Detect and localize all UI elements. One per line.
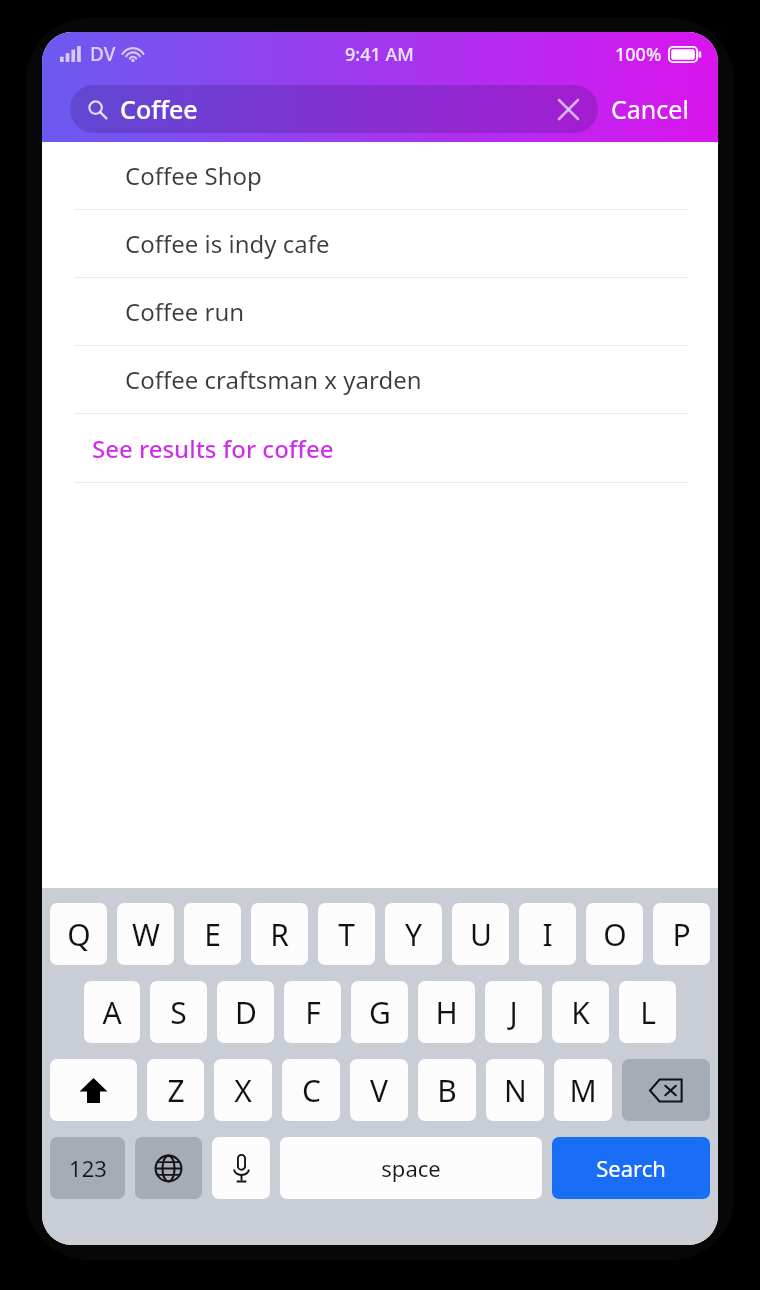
button[interactable]: A <box>84 981 140 1043</box>
staticText: G <box>369 992 391 1033</box>
button[interactable]: P <box>653 903 710 965</box>
staticText: V <box>370 1070 388 1111</box>
staticText: Search <box>596 1153 666 1183</box>
staticText: H <box>435 992 458 1033</box>
button[interactable]: D <box>217 981 274 1043</box>
button[interactable]: B <box>418 1059 476 1121</box>
button[interactable]: Shift <box>50 1059 137 1121</box>
button[interactable]: Clear search <box>550 91 586 127</box>
staticText: C <box>302 1070 321 1111</box>
button[interactable]: See results for coffee <box>42 414 718 482</box>
button[interactable]: Switch keyboard <box>135 1137 202 1199</box>
button[interactable]: T <box>318 903 375 965</box>
staticText: S <box>170 992 187 1033</box>
staticText: E <box>204 914 221 955</box>
button[interactable]: I <box>519 903 576 965</box>
staticText: I <box>542 914 553 955</box>
staticText: A <box>102 992 122 1033</box>
button[interactable]: F <box>284 981 341 1043</box>
staticText: D <box>235 992 257 1033</box>
button[interactable]: Search <box>552 1137 710 1199</box>
button[interactable]: J <box>485 981 542 1043</box>
button[interactable]: Z <box>147 1059 204 1121</box>
staticText: 123 <box>69 1153 107 1183</box>
staticText: J <box>509 992 518 1033</box>
staticText: Y <box>405 914 422 955</box>
button[interactable]: space <box>280 1137 542 1199</box>
button[interactable]: W <box>117 903 174 965</box>
staticText: K <box>571 992 590 1033</box>
staticText: P <box>672 914 691 955</box>
button[interactable]: Coffee craftsman x yarden <box>42 346 718 413</box>
button[interactable]: Coffee <box>70 85 598 133</box>
button[interactable]: Backspace <box>622 1059 710 1121</box>
staticText: Q <box>67 914 91 955</box>
button[interactable]: K <box>552 981 609 1043</box>
staticText: Coffee craftsman x yarden <box>125 363 422 396</box>
staticText: Cancel <box>611 92 689 126</box>
staticText: W <box>132 914 160 955</box>
staticText: Z <box>167 1070 185 1111</box>
staticText: See results for coffee <box>92 432 334 465</box>
staticText: L <box>640 992 656 1033</box>
staticText: O <box>603 914 627 955</box>
button[interactable]: N <box>486 1059 544 1121</box>
button[interactable]: O <box>586 903 643 965</box>
staticText: 100% <box>615 42 662 67</box>
staticText: 9:41 AM <box>345 42 414 67</box>
staticText: R <box>270 914 289 955</box>
staticText: Coffee Shop <box>125 159 262 192</box>
staticText: Coffee is indy cafe <box>125 227 330 260</box>
button[interactable]: Cancel <box>598 84 702 134</box>
button[interactable]: Y <box>385 903 442 965</box>
staticText: F <box>305 992 321 1033</box>
button[interactable]: H <box>418 981 475 1043</box>
button[interactable]: Q <box>50 903 107 965</box>
button[interactable]: L <box>619 981 676 1043</box>
staticText: Coffee <box>120 92 198 126</box>
button[interactable]: S <box>150 981 207 1043</box>
button[interactable]: 123 <box>50 1137 125 1199</box>
staticText: X <box>234 1070 252 1111</box>
button[interactable]: R <box>251 903 308 965</box>
staticText: N <box>504 1070 527 1111</box>
button[interactable]: Coffee is indy cafe <box>42 210 718 277</box>
staticText: T <box>338 914 355 955</box>
button[interactable]: U <box>452 903 509 965</box>
button[interactable]: G <box>351 981 408 1043</box>
staticText: Coffee run <box>125 295 245 328</box>
button[interactable]: X <box>214 1059 272 1121</box>
staticText: U <box>470 914 492 955</box>
button[interactable]: Coffee Shop <box>42 142 718 209</box>
button[interactable]: M <box>554 1059 612 1121</box>
staticText: space <box>381 1153 441 1183</box>
staticText: B <box>437 1070 457 1111</box>
button[interactable]: Coffee run <box>42 278 718 345</box>
button[interactable]: V <box>350 1059 408 1121</box>
button[interactable]: Voice input <box>212 1137 270 1199</box>
button[interactable]: E <box>184 903 241 965</box>
staticText: M <box>569 1070 597 1111</box>
staticText: DV <box>90 41 116 67</box>
button[interactable]: C <box>282 1059 340 1121</box>
